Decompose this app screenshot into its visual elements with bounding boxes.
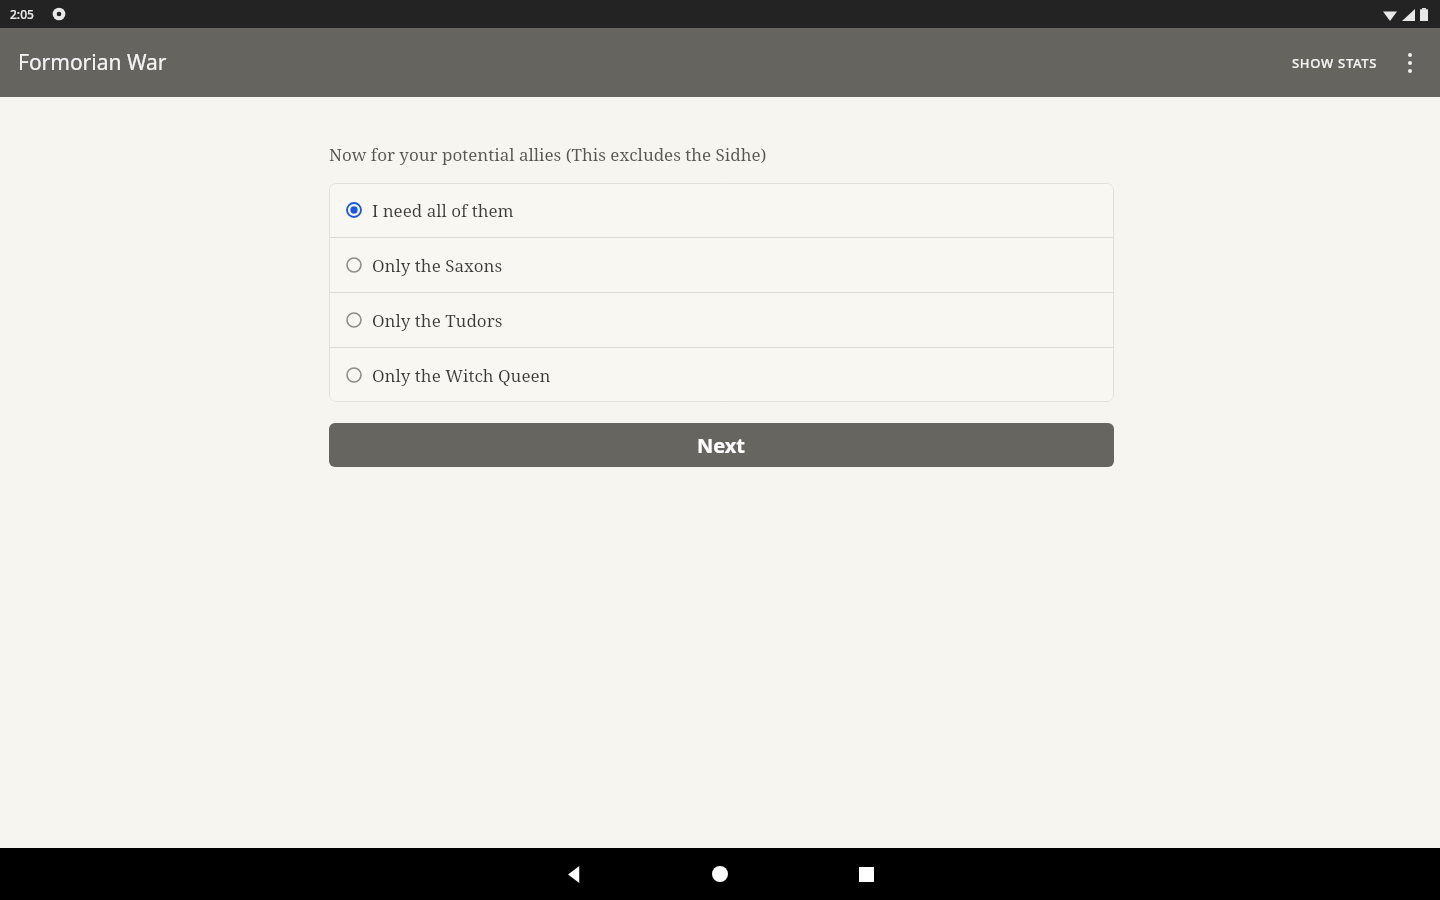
staticText: Next xyxy=(697,432,746,459)
staticText: Formorian War xyxy=(18,48,167,77)
staticText: Now for your potential allies (This excl… xyxy=(329,143,767,166)
button[interactable]: SHOW STATS xyxy=(1282,44,1388,82)
button[interactable]: I need all of them xyxy=(329,183,1114,237)
button[interactable]: Recent apps xyxy=(827,848,905,900)
button[interactable]: Only the Witch Queen xyxy=(329,348,1114,402)
staticText: SHOW STATS xyxy=(1292,54,1378,72)
staticText: Only the Saxons xyxy=(372,254,503,277)
button[interactable]: Back xyxy=(535,848,613,900)
button[interactable]: Home xyxy=(681,848,759,900)
staticText: Only the Tudors xyxy=(372,309,503,332)
staticText: Only the Witch Queen xyxy=(372,364,551,387)
button[interactable]: Only the Tudors xyxy=(329,293,1114,347)
button[interactable]: More options xyxy=(1388,41,1432,85)
staticText: I need all of them xyxy=(372,199,514,222)
staticText: 2:05 xyxy=(10,6,34,22)
button[interactable]: Only the Saxons xyxy=(329,238,1114,292)
button[interactable]: Next xyxy=(329,423,1114,467)
